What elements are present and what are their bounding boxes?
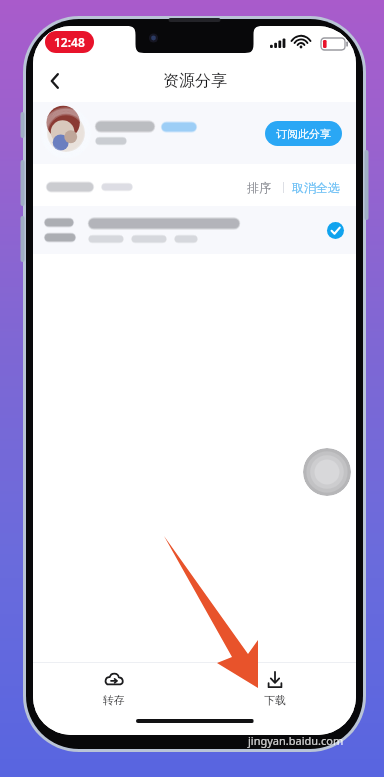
staticText: 取消全选 [292, 180, 340, 195]
staticText: 下载 [264, 693, 286, 707]
button[interactable]: Selected [33, 206, 356, 254]
button[interactable]: 订阅此分享 [265, 121, 342, 146]
button[interactable]: 转存 [33, 663, 194, 713]
staticText: 12:48 [54, 34, 85, 50]
staticText: jingyan.baidu.com [248, 733, 344, 748]
button[interactable]: Floating assistant [303, 448, 351, 496]
staticText: 排序 [247, 180, 271, 195]
button[interactable]: Selected [327, 222, 344, 239]
button[interactable]: 下载 [194, 663, 356, 713]
staticText: Baidu [252, 706, 307, 732]
button[interactable]: 取消全选 [290, 176, 342, 199]
staticText: 订阅此分享 [276, 127, 331, 141]
button[interactable]: 排序 [241, 176, 277, 199]
staticText: 转存 [103, 693, 125, 707]
button[interactable]: Back [33, 60, 77, 102]
staticText: 资源分享 [163, 71, 227, 91]
